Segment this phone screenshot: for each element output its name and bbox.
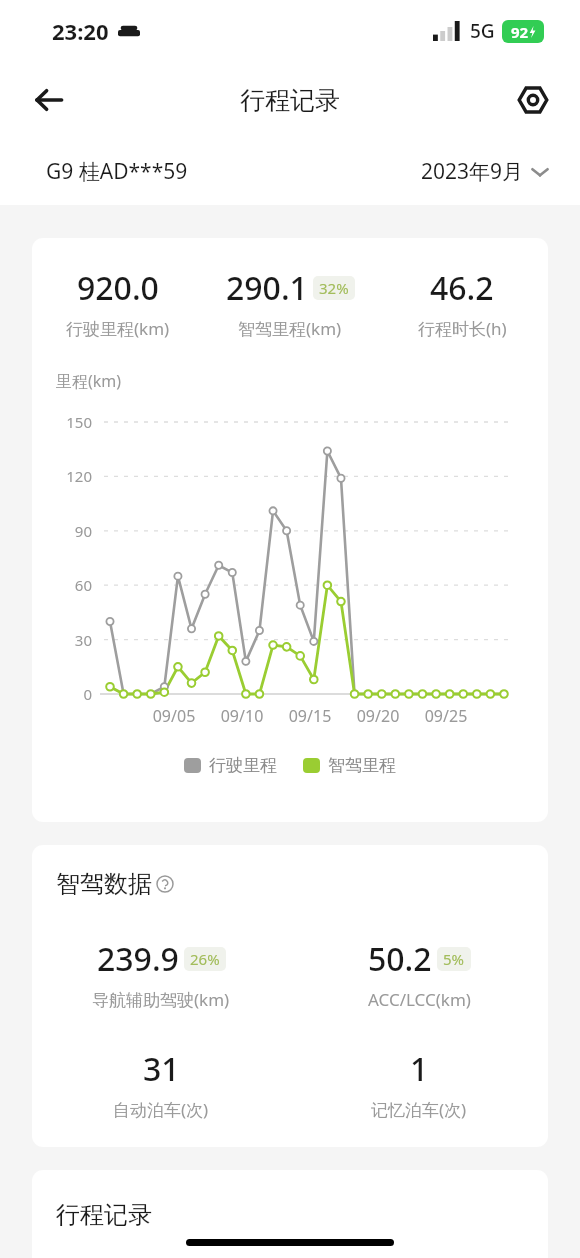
staticText: 90 bbox=[50, 521, 92, 541]
staticText: 5G bbox=[470, 18, 495, 44]
staticText: 1 bbox=[410, 1047, 429, 1091]
staticText: ACC/LCC(km) bbox=[368, 988, 471, 1011]
staticText: 行程时长(h) bbox=[418, 317, 507, 340]
staticText: 09/10 bbox=[208, 705, 276, 727]
button[interactable]: 智驾数据 bbox=[56, 869, 174, 899]
staticText: 23:20 bbox=[52, 16, 109, 46]
staticText: 09/05 bbox=[140, 705, 208, 727]
button[interactable]: 2023年9月 bbox=[421, 157, 550, 186]
staticText: 92 bbox=[511, 22, 529, 42]
staticText: 09/25 bbox=[412, 705, 480, 727]
staticText: 290.1 bbox=[226, 266, 308, 310]
staticText: 09/20 bbox=[344, 705, 412, 727]
staticText: 智驾里程 bbox=[328, 755, 396, 776]
staticText: 920.0 bbox=[77, 266, 159, 310]
staticText: 150 bbox=[50, 412, 92, 432]
staticText: 行程记录 bbox=[56, 1200, 152, 1230]
staticText: 239.9 bbox=[97, 937, 179, 981]
staticText: 120 bbox=[50, 466, 92, 486]
staticText: 行驶里程 bbox=[209, 755, 277, 776]
staticText: 智驾里程(km) bbox=[238, 317, 342, 340]
staticText: 自动泊车(次) bbox=[113, 1098, 209, 1121]
staticText: 26% bbox=[190, 949, 220, 969]
staticText: 09/15 bbox=[276, 705, 344, 727]
staticText: 31 bbox=[143, 1047, 180, 1091]
staticText: 46.2 bbox=[430, 266, 494, 310]
staticText: 行程记录 bbox=[240, 85, 340, 116]
staticText: 30 bbox=[50, 630, 92, 650]
button[interactable]: Back bbox=[22, 73, 76, 127]
staticText: 记忆泊车(次) bbox=[371, 1098, 467, 1121]
staticText: 里程(km) bbox=[56, 370, 122, 392]
staticText: 智驾数据 bbox=[56, 869, 152, 899]
staticText: 导航辅助驾驶(km) bbox=[92, 988, 230, 1011]
staticText: 5% bbox=[443, 949, 465, 969]
staticText: 2023年9月 bbox=[421, 157, 524, 186]
staticText: 行驶里程(km) bbox=[66, 317, 170, 340]
staticText: 60 bbox=[50, 575, 92, 595]
staticText: 0 bbox=[50, 684, 92, 704]
staticText: 32% bbox=[319, 278, 349, 298]
staticText: G9 桂AD***59 bbox=[46, 157, 188, 186]
staticText: 50.2 bbox=[368, 937, 432, 981]
button[interactable]: Settings bbox=[508, 75, 558, 125]
